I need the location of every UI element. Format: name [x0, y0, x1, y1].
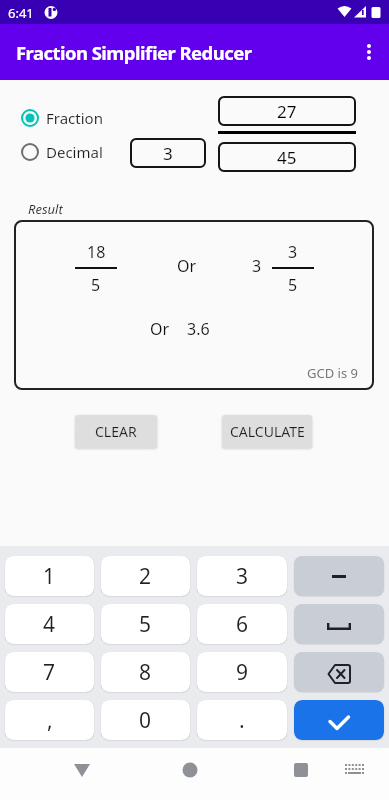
- staticText: Fraction: [46, 108, 103, 128]
- button[interactable]: [294, 556, 384, 596]
- staticText: Or: [177, 255, 197, 277]
- staticText: 8: [139, 658, 152, 687]
- button[interactable]: [166, 748, 214, 800]
- button[interactable]: 2: [101, 556, 190, 596]
- button[interactable]: ,: [5, 700, 94, 740]
- button[interactable]: CALCULATE: [222, 415, 312, 448]
- staticText: 3: [163, 142, 173, 165]
- button[interactable]: [294, 700, 384, 740]
- staticText: 3: [252, 255, 262, 277]
- button[interactable]: Fraction: [20, 108, 103, 128]
- staticText: CALCULATE: [230, 422, 305, 441]
- staticText: Decimal: [46, 142, 103, 162]
- button[interactable]: [58, 748, 106, 800]
- button[interactable]: 9: [197, 652, 287, 692]
- button[interactable]: 3: [130, 138, 206, 168]
- button[interactable]: 4: [5, 604, 94, 644]
- staticText: 5: [91, 274, 101, 296]
- staticText: Or: [150, 318, 170, 340]
- button[interactable]: 7: [5, 652, 94, 692]
- staticText: GCD is 9: [307, 364, 358, 380]
- button[interactable]: [277, 748, 325, 800]
- staticText: 5: [288, 274, 298, 296]
- staticText: 6: [236, 610, 249, 639]
- staticText: 3.6: [187, 318, 210, 340]
- staticText: 27: [277, 100, 297, 123]
- staticText: 45: [277, 146, 297, 169]
- button[interactable]: 6: [197, 604, 287, 644]
- staticText: .: [239, 706, 245, 735]
- staticText: Fraction Simplifier Reducer: [16, 40, 252, 65]
- button[interactable]: 1: [5, 556, 94, 596]
- button[interactable]: 27: [218, 96, 356, 126]
- staticText: 4: [43, 610, 56, 639]
- staticText: Result: [28, 200, 63, 216]
- button[interactable]: 8: [101, 652, 190, 692]
- staticText: 6:41: [8, 4, 34, 22]
- button[interactable]: CLEAR: [75, 415, 157, 448]
- staticText: 1: [43, 562, 56, 591]
- staticText: CLEAR: [95, 422, 137, 441]
- button[interactable]: Decimal: [20, 142, 103, 162]
- staticText: 0: [139, 706, 152, 735]
- button[interactable]: 3: [197, 556, 287, 596]
- button[interactable]: [294, 652, 384, 692]
- button[interactable]: 45: [218, 142, 356, 172]
- staticText: 3: [236, 562, 249, 591]
- button[interactable]: [349, 24, 389, 80]
- staticText: 7: [43, 658, 56, 687]
- staticText: 3: [288, 241, 298, 263]
- staticText: 9: [236, 658, 249, 687]
- staticText: 18: [87, 241, 106, 263]
- button[interactable]: [294, 604, 384, 644]
- button[interactable]: 5: [101, 604, 190, 644]
- button[interactable]: [336, 748, 372, 800]
- button[interactable]: .: [197, 700, 287, 740]
- staticText: 5: [139, 610, 152, 639]
- button[interactable]: 0: [101, 700, 190, 740]
- staticText: ,: [47, 706, 53, 735]
- staticText: 2: [139, 562, 152, 591]
